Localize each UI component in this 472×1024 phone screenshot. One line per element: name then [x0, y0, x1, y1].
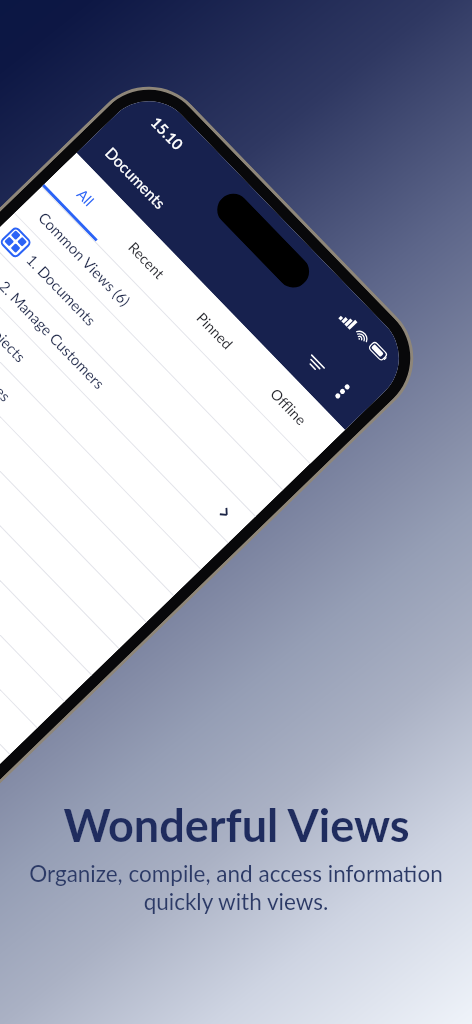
staticText: Organize, compile, and access informatio…	[14, 860, 458, 915]
staticText: Offline	[267, 385, 310, 428]
button[interactable]: 4. Employees	[0, 293, 201, 596]
button[interactable]: Recent	[96, 208, 198, 311]
staticText: 4. Employees	[0, 330, 15, 405]
staticText: Documents	[101, 143, 170, 213]
button[interactable]: Pinned	[163, 278, 267, 383]
staticText: All	[74, 185, 98, 209]
button[interactable]: 1. Documents	[0, 213, 283, 516]
button[interactable]: All	[42, 153, 130, 241]
button[interactable]: More options	[325, 374, 359, 408]
button[interactable]: 2. Manage Customers	[0, 240, 255, 543]
button[interactable]: 5. Tasks	[0, 319, 173, 622]
staticText: 1. Documents	[23, 250, 100, 329]
staticText: Common Views (6)	[35, 208, 134, 310]
staticText: Wonderful Views	[63, 798, 410, 852]
staticText: Pinned	[193, 309, 237, 353]
button[interactable]: Offline	[233, 349, 345, 463]
button[interactable]: Filter	[299, 347, 333, 381]
button[interactable]: 3. Projects	[0, 266, 228, 569]
staticText: 3. Projects	[0, 303, 30, 366]
staticText: Recent	[125, 239, 168, 282]
staticText: 2. Manage Customers	[0, 277, 109, 393]
staticText: 15.10	[148, 113, 188, 154]
